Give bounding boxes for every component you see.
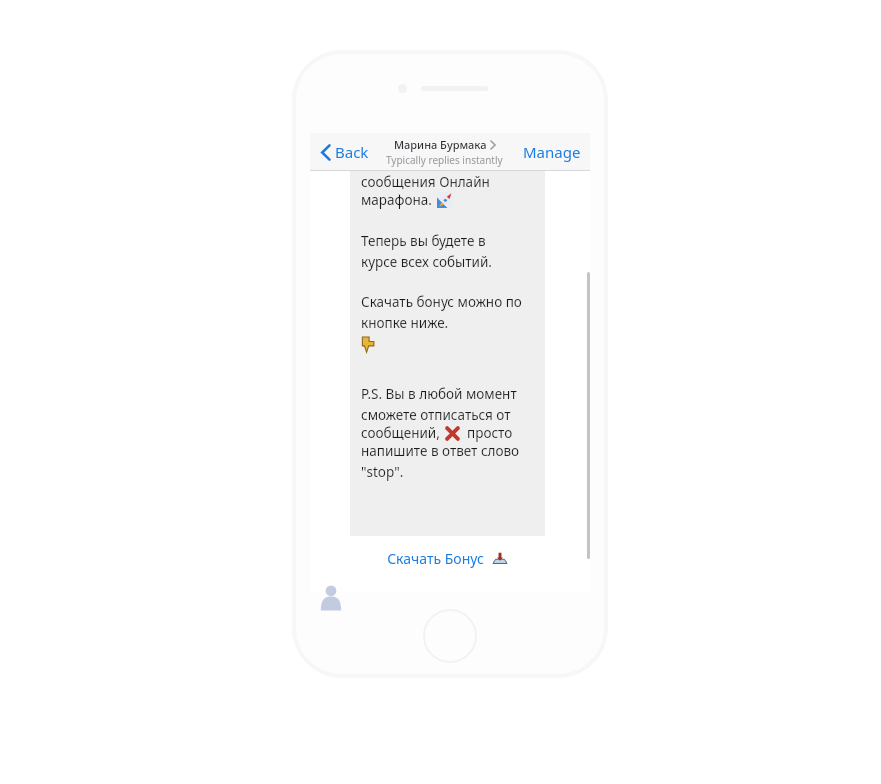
other: Rocket <box>437 192 453 208</box>
staticText: Back <box>335 142 369 162</box>
staticText: сообщения Онлайн <box>361 173 490 191</box>
staticText: Typically replies instantly <box>386 153 503 167</box>
button[interactable]: Марина Бурмака <box>386 137 503 167</box>
staticText: Марина Бурмака <box>394 137 487 152</box>
button[interactable]: Скачать Бонус <box>350 536 545 581</box>
other: Cancel <box>445 426 460 441</box>
staticText: Manage <box>523 142 581 162</box>
button[interactable]: Back <box>319 138 371 166</box>
other: Download <box>492 552 508 566</box>
staticText: Скачать Бонус <box>387 549 484 568</box>
staticText: Теперь вы будете в курсе всех событий. <box>361 232 492 271</box>
staticText: сообщений, <box>361 424 440 442</box>
staticText: просто <box>467 424 513 442</box>
staticText: напишите в ответ слово "stop". <box>361 442 520 481</box>
staticText: марафона. <box>361 191 432 209</box>
staticText: P.S. Вы в любой момент сможете отписатьс… <box>361 385 517 424</box>
button[interactable]: Manage <box>520 138 584 166</box>
staticText: Скачать бонус можно по кнопке ниже. <box>361 293 522 332</box>
other: Pointing down <box>361 336 375 353</box>
